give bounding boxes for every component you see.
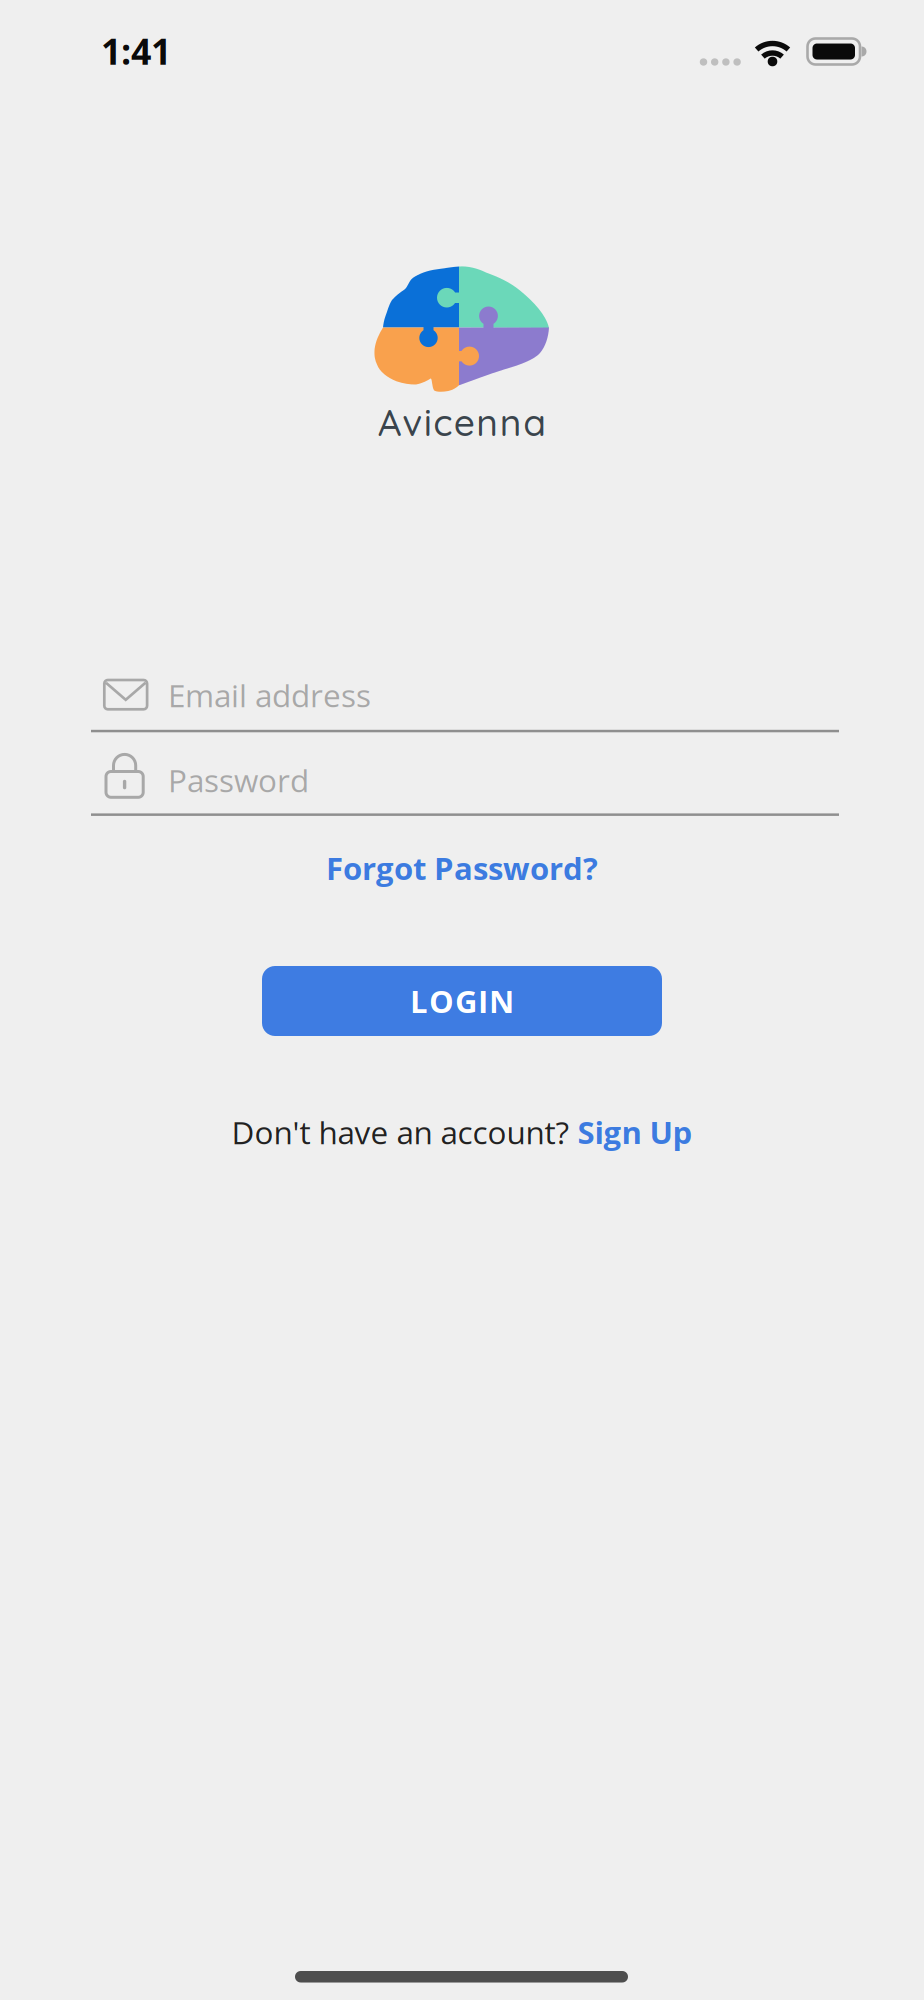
button[interactable]: Email address [0,665,924,725]
button[interactable]: Sign Up [577,1111,692,1153]
staticText: Forgot Password? [326,847,598,889]
button[interactable]: Password [0,750,924,810]
staticText: Don't have an account? [231,1111,577,1153]
button[interactable]: Forgot Password? [212,838,712,898]
staticText: Sign Up [577,1111,692,1153]
staticText: Password [168,759,309,801]
staticText: Email address [168,674,371,716]
staticText: Avicenna [378,399,546,445]
button[interactable]: LOGIN [262,966,662,1036]
staticText: LOGIN [410,980,514,1022]
staticText: 1:41 [101,27,171,75]
